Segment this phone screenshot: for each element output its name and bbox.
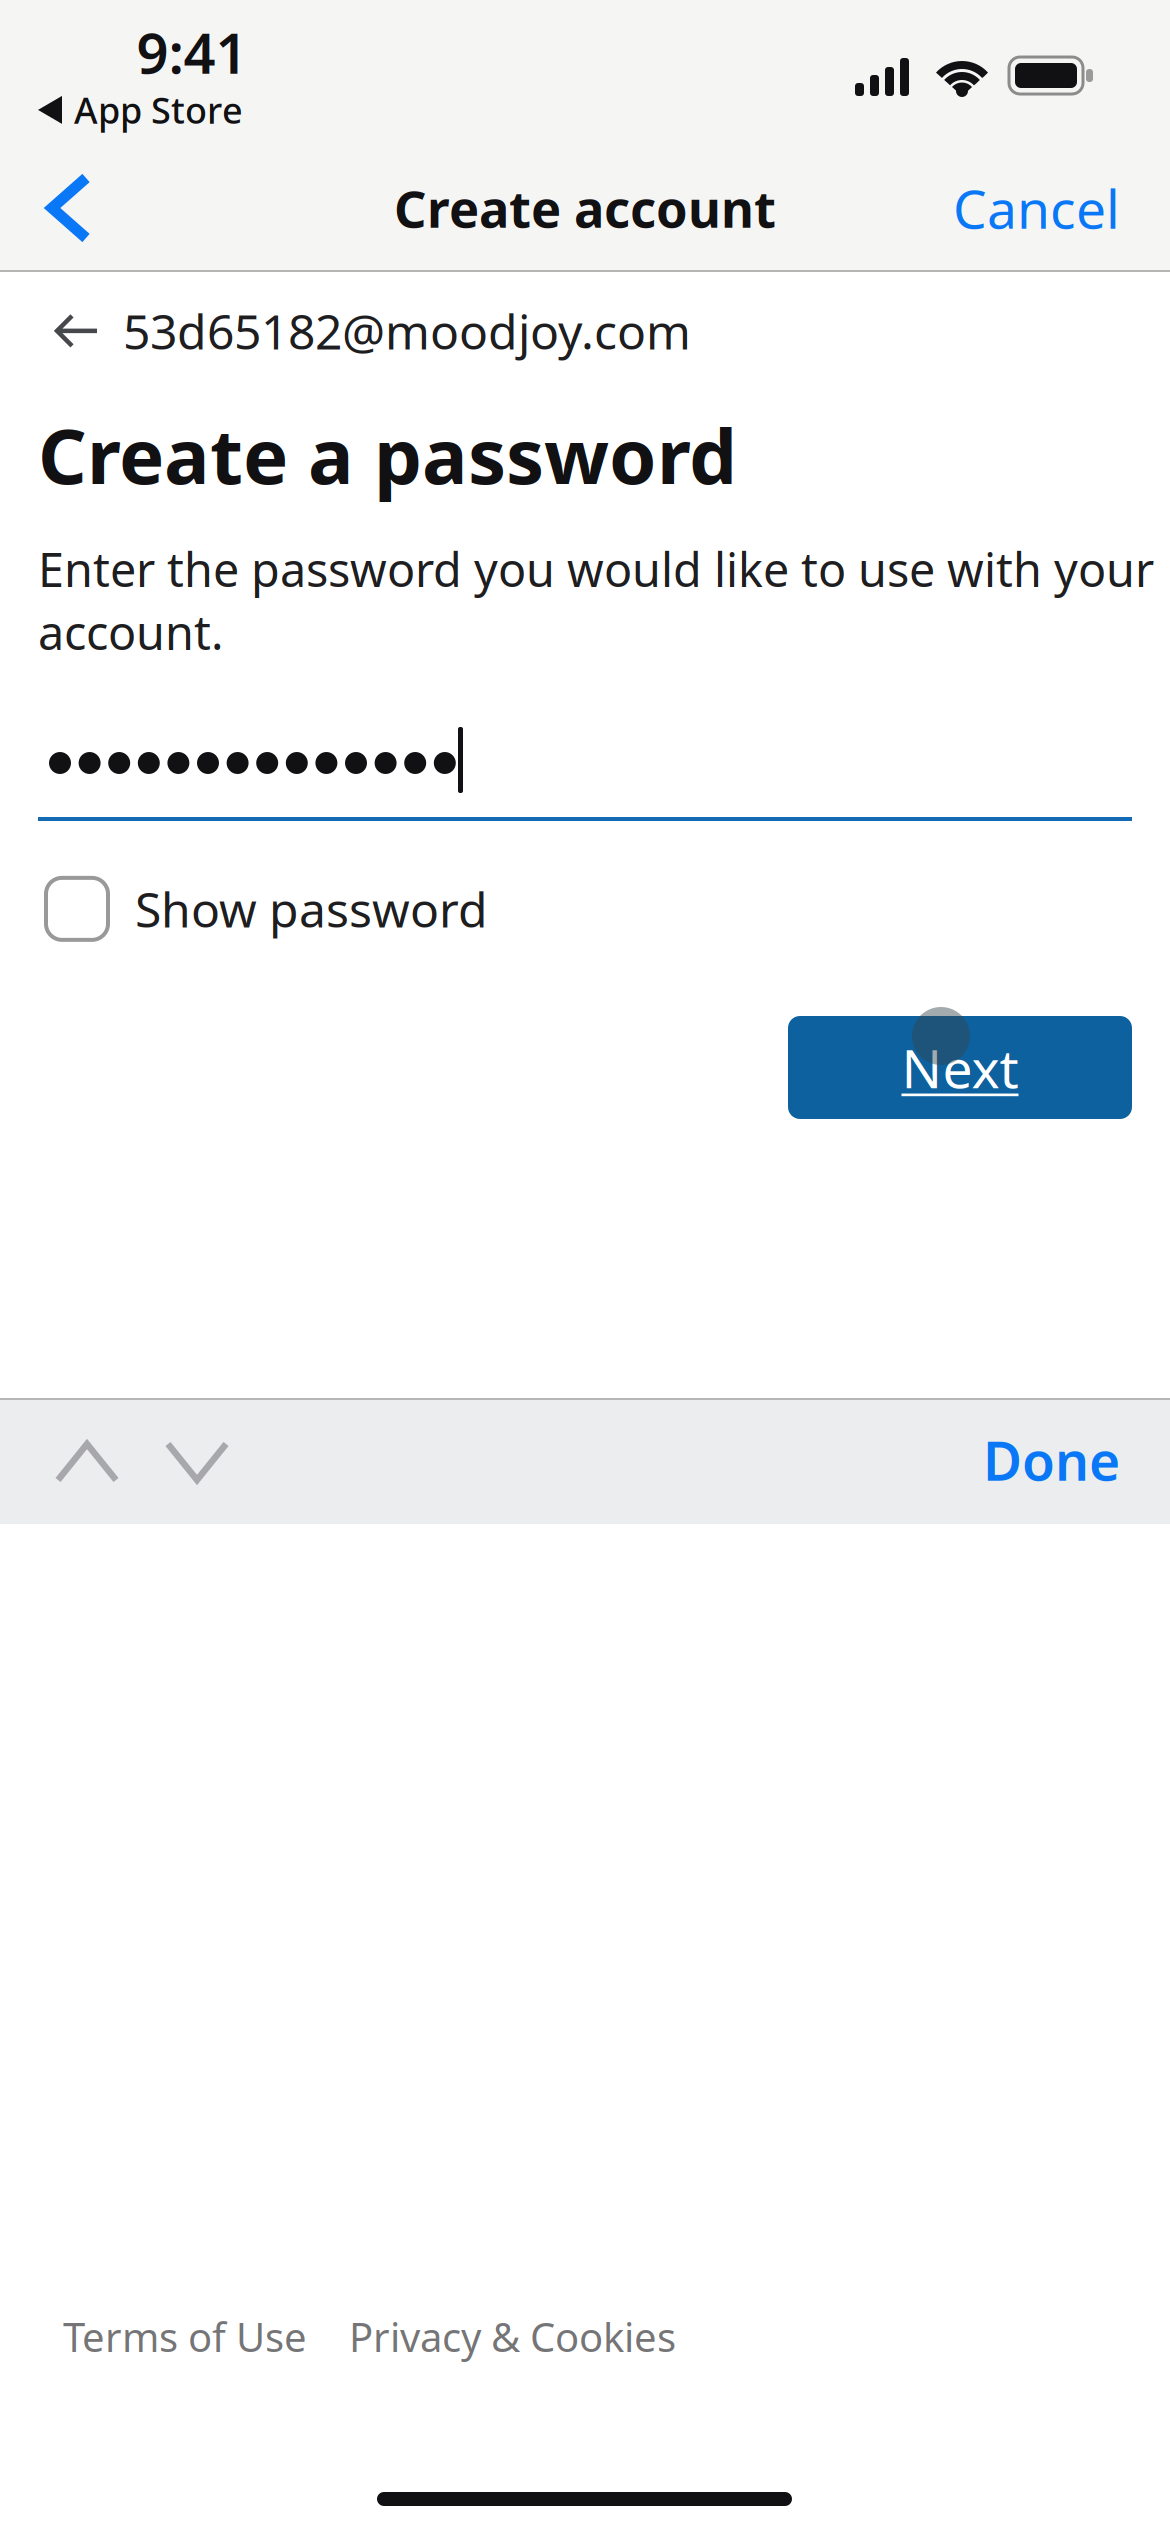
button[interactable]: Show password xyxy=(46,869,488,949)
staticText: Create a password xyxy=(38,404,737,505)
staticText: Enter the password you would like to use… xyxy=(38,538,1154,600)
staticText: Next xyxy=(901,1032,1018,1103)
staticText: Privacy & Cookies xyxy=(349,2310,676,2363)
staticText: account. xyxy=(38,601,224,663)
staticText: Create account xyxy=(394,174,776,242)
button[interactable]: Terms of Use xyxy=(63,2300,307,2373)
staticText: Cancel xyxy=(953,173,1120,243)
button[interactable]: Next xyxy=(788,1016,1132,1119)
button[interactable]: Back xyxy=(0,160,124,256)
staticText: 53d65182@moodjoy.com xyxy=(123,299,691,363)
staticText: Show password xyxy=(135,877,488,941)
button[interactable]: Previous field xyxy=(42,1422,132,1502)
staticText: 9:41 xyxy=(136,15,247,89)
button[interactable]: Privacy & Cookies xyxy=(349,2300,676,2373)
staticText: Terms of Use xyxy=(63,2310,307,2363)
staticText: App Store xyxy=(74,86,243,134)
button[interactable]: 53d65182@moodjoy.com xyxy=(55,285,691,377)
button[interactable]: Cancel xyxy=(953,163,1120,253)
staticText: Done xyxy=(983,1425,1120,1495)
button[interactable]: Done xyxy=(983,1411,1120,1509)
button[interactable]: Next field xyxy=(152,1422,242,1502)
